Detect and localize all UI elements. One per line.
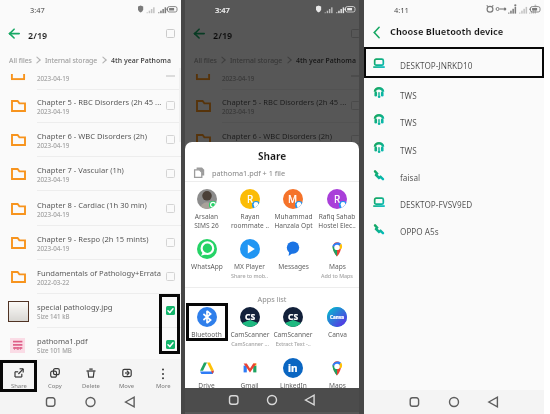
button[interactable]: Fundamentals of Pathology+Errata (0, 260, 181, 294)
button[interactable]: TWS (364, 135, 544, 161)
button[interactable]: Back (370, 26, 383, 39)
button[interactable]: Chapter 9 - Respo (2h 15 mints) (185, 226, 359, 260)
staticText: Fundamentals of Pathology+Errata (222, 268, 348, 278)
button[interactable]: OPPO A5s (364, 216, 544, 242)
button[interactable]: Canva (315, 307, 359, 339)
button[interactable]: Select (351, 204, 360, 213)
staticText: Delete (82, 382, 100, 390)
button[interactable]: Select (166, 272, 175, 281)
button[interactable]: Select (351, 101, 360, 110)
staticText: 2/19 (213, 29, 233, 41)
staticText: Rafiq Sahab Hostel Elec.. (318, 212, 356, 230)
button[interactable]: Select (351, 238, 360, 247)
button[interactable]: Select (166, 238, 175, 247)
staticText: 3:47 (215, 5, 230, 15)
button[interactable]: Select (166, 101, 175, 110)
staticText: 2023-04-19 (37, 74, 70, 82)
staticText: special pathology.jpg (37, 302, 163, 312)
button[interactable]: PDF (185, 328, 359, 362)
staticText: 2023-04-19 (37, 107, 70, 115)
button[interactable]: Select (166, 135, 175, 144)
staticText: M (288, 192, 298, 206)
staticText: Maps (329, 262, 346, 271)
staticText: All files (9, 56, 32, 65)
button[interactable]: Chapter 7 - Vascular (1h) (185, 157, 359, 191)
button[interactable]: TWS (364, 107, 544, 133)
staticText: 2023-04-19 (222, 175, 255, 183)
button[interactable]: Back (192, 25, 208, 43)
button[interactable]: Chapter 6 - WBC Disorders (2h) (0, 123, 181, 157)
button[interactable]: Select (351, 135, 360, 144)
staticText: in (288, 361, 298, 375)
staticText: 2023-04-19 (37, 244, 70, 252)
staticText: 4th year Pathoma (296, 56, 356, 65)
button[interactable]: faisal (364, 162, 544, 188)
staticText: CS (245, 311, 256, 323)
button[interactable]: CS (228, 307, 271, 347)
staticText: Muhammad Hanzala Opt (274, 212, 313, 230)
button[interactable]: Gmail (228, 358, 271, 388)
button[interactable]: Arsalan SIMS 26 (185, 189, 228, 230)
staticText: Chapter 5 - RBC Disorders (2h 45 ... (222, 97, 348, 107)
button[interactable]: TWS (364, 80, 544, 106)
button[interactable]: R (315, 189, 359, 230)
staticText: 2023-04-19 (222, 74, 255, 82)
button[interactable]: Chapter 5 - RBC Disorders (2h 45 ... (185, 89, 359, 123)
button[interactable]: Share (0, 359, 37, 390)
staticText: Canva (328, 330, 347, 339)
staticText: More (156, 382, 171, 390)
button[interactable]: Bluetooth (185, 307, 228, 339)
button[interactable]: in (271, 358, 315, 388)
button[interactable]: Move (109, 359, 145, 390)
staticText: Internal storage (45, 56, 98, 65)
staticText: CamScanner (273, 330, 313, 339)
staticText: 2023-04-19 (37, 175, 70, 183)
staticText: Chapter 7 - Vascular (1h) (37, 165, 163, 175)
button[interactable]: Chapter 7 - Vascular (1h) (0, 157, 181, 191)
button[interactable]: Select (166, 204, 175, 213)
staticText: TWS (400, 145, 417, 156)
button[interactable]: special pathology.jpg (185, 294, 359, 328)
staticText: Choose Bluetooth device (390, 25, 504, 38)
button[interactable]: Maps (315, 358, 359, 388)
button[interactable]: Chapter 5 - RBC Disorders (2h 45 ... (0, 89, 181, 123)
button[interactable]: Drive (185, 358, 228, 388)
staticText: 2023-04-19 (222, 141, 255, 149)
button[interactable]: R (228, 189, 271, 230)
button[interactable]: More (145, 359, 181, 390)
button[interactable]: Back (7, 25, 23, 43)
button[interactable]: Selected (166, 340, 175, 349)
button[interactable]: Select all (166, 29, 175, 38)
staticText: pathoma1.pdf + 1 file (212, 168, 286, 178)
button[interactable]: Chapter 6 - WBC Disorders (2h) (185, 123, 359, 157)
staticText: 2023-04-19 (37, 210, 70, 218)
button[interactable]: MX Player (228, 239, 271, 279)
button[interactable]: DESKTOP-FVSV9ED (364, 189, 544, 215)
button[interactable]: Messages (271, 239, 315, 271)
button[interactable]: Fundamentals of Pathology+Errata (185, 260, 359, 294)
button[interactable]: Select (351, 169, 360, 178)
button[interactable]: Selected (166, 306, 175, 315)
button[interactable]: Select all (351, 29, 360, 38)
button[interactable]: CS (271, 307, 315, 347)
button[interactable]: special pathology.jpg (0, 294, 181, 328)
button[interactable]: Chapter 9 - Respo (2h 15 mints) (0, 226, 181, 260)
button[interactable]: Chapter 8 - Cardiac (1h 30 min) (185, 192, 359, 226)
button[interactable]: Delete (73, 359, 109, 390)
button[interactable]: DESKTOP-JNRKD10 (364, 50, 544, 76)
button[interactable]: Selected (351, 340, 360, 349)
button[interactable]: M (271, 189, 315, 230)
button[interactable]: Select (351, 272, 360, 281)
button[interactable]: Selected (351, 306, 360, 315)
button[interactable]: Chapter 8 - Cardiac (1h 30 min) (0, 192, 181, 226)
button[interactable]: PDF (0, 328, 181, 362)
button[interactable]: WhatsApp (185, 239, 228, 271)
staticText: Chapter 6 - WBC Disorders (2h) (222, 131, 348, 141)
button[interactable]: Select (166, 169, 175, 178)
staticText: Rayan roommate .. (231, 212, 269, 230)
button[interactable]: Maps (315, 239, 359, 279)
button[interactable]: Copy (37, 359, 73, 390)
staticText: Canva (330, 314, 345, 320)
